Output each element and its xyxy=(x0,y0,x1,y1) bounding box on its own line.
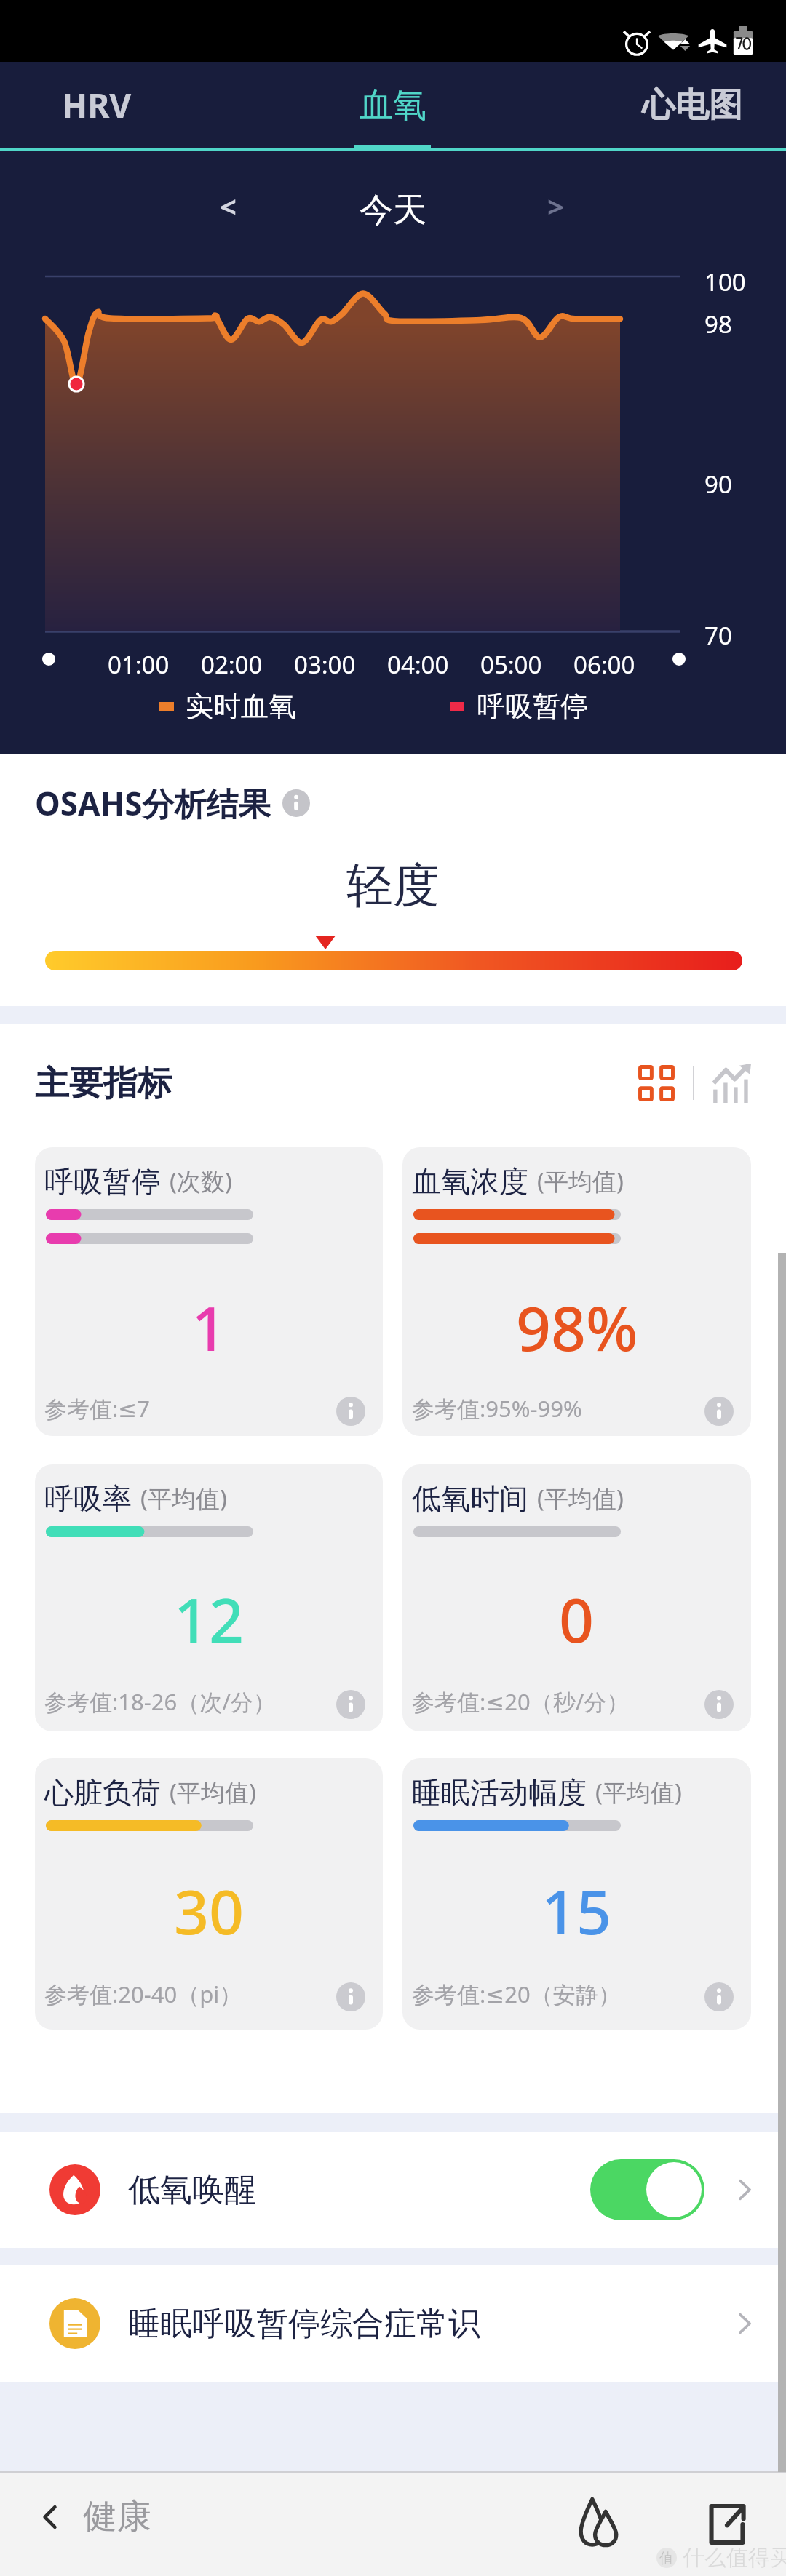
staticText: 呼吸暂停 xyxy=(477,689,588,724)
button[interactable]: 睡眠呼吸暂停综合症常识 xyxy=(0,2265,786,2382)
staticText: (平均值) xyxy=(170,1776,256,1809)
staticText: 98% xyxy=(516,1285,638,1368)
button[interactable]: Info xyxy=(704,1690,734,1719)
button[interactable]: 呼吸暂停 xyxy=(35,1147,383,1436)
staticText: 12 xyxy=(174,1577,245,1660)
button[interactable]: Blood oxygen xyxy=(571,2494,627,2549)
button[interactable]: Info xyxy=(336,1982,365,2011)
button[interactable]: Info xyxy=(704,1397,734,1426)
button[interactable]: Next day xyxy=(528,179,582,233)
staticText: 参考值:≤20（安静） xyxy=(412,1979,621,2009)
staticText: 98 xyxy=(704,308,732,340)
button[interactable]: 心脏负荷 xyxy=(35,1758,383,2030)
staticText: 主要指标 xyxy=(35,1062,172,1104)
staticText: < xyxy=(220,186,237,226)
button[interactable]: Info xyxy=(704,1982,734,2011)
staticText: 70 xyxy=(704,619,732,652)
staticText: 15 xyxy=(541,1869,612,1952)
staticText: 心脏负荷 xyxy=(44,1774,161,1811)
button[interactable]: 睡眠活动幅度 xyxy=(402,1758,751,2030)
staticText: 睡眠呼吸暂停综合症常识 xyxy=(128,2304,480,2344)
staticText: 值 xyxy=(659,2549,674,2567)
staticText: 今天 xyxy=(360,189,426,231)
staticText: 轻度 xyxy=(346,856,440,915)
staticText: 0 xyxy=(559,1577,595,1660)
staticText: 实时血氧 xyxy=(186,689,296,724)
staticText: (平均值) xyxy=(595,1776,682,1809)
button[interactable]: HRV xyxy=(0,62,194,148)
staticText: 呼吸率 xyxy=(44,1480,132,1517)
staticText: 心电图 xyxy=(642,84,742,127)
staticText: 参考值:95%-99% xyxy=(412,1393,582,1424)
staticText: 血氧 xyxy=(360,84,426,127)
staticText: 呼吸暂停 xyxy=(44,1163,161,1200)
button[interactable]: Info xyxy=(336,1397,365,1426)
staticText: 参考值:18-26（次/分） xyxy=(44,1686,276,1717)
staticText: OSAHS分析结果 xyxy=(35,781,271,825)
staticText: 30 xyxy=(174,1869,245,1952)
staticText: 参考值:20-40（pi） xyxy=(44,1979,242,2009)
staticText: 低氧唤醒 xyxy=(128,2170,256,2210)
staticText: (次数) xyxy=(170,1165,232,1197)
staticText: 血氧浓度 xyxy=(412,1163,528,1200)
staticText: 02:00 xyxy=(201,648,263,681)
staticText: 100 xyxy=(704,266,746,298)
button[interactable]: 健康 xyxy=(29,2491,156,2543)
staticText: HRV xyxy=(62,82,132,128)
staticText: 1 xyxy=(191,1285,227,1368)
staticText: 06:00 xyxy=(573,648,635,681)
button[interactable]: 低氧唤醒 xyxy=(0,2132,786,2248)
button[interactable]: Trend view xyxy=(712,1064,751,1103)
button[interactable]: Share xyxy=(699,2497,755,2552)
staticText: 04:00 xyxy=(387,648,449,681)
staticText: 05:00 xyxy=(480,648,542,681)
staticText: 什么值得买 xyxy=(683,2544,786,2572)
staticText: 睡眠活动幅度 xyxy=(412,1774,587,1811)
staticText: 03:00 xyxy=(294,648,356,681)
button[interactable]: Toggle low oxygen alert xyxy=(590,2159,704,2220)
button[interactable]: 心电图 xyxy=(598,62,786,148)
button[interactable]: Grid view xyxy=(638,1064,675,1102)
button[interactable]: Previous day xyxy=(201,179,255,233)
staticText: (平均值) xyxy=(537,1482,624,1515)
button[interactable]: 呼吸率 xyxy=(35,1464,383,1731)
button[interactable]: 血氧 xyxy=(298,62,488,148)
staticText: 参考值:≤20（秒/分） xyxy=(412,1686,630,1717)
button[interactable]: Info xyxy=(336,1690,365,1719)
staticText: 90 xyxy=(704,468,732,501)
button[interactable]: Info about OSAHS xyxy=(282,789,310,817)
staticText: 01:00 xyxy=(108,648,170,681)
button[interactable]: 血氧浓度 xyxy=(402,1147,751,1436)
staticText: 参考值:≤7 xyxy=(44,1393,151,1424)
staticText: 健康 xyxy=(83,2495,151,2538)
button[interactable]: 低氧时间 xyxy=(402,1464,751,1731)
staticText: 低氧时间 xyxy=(412,1480,528,1517)
staticText: (平均值) xyxy=(537,1165,624,1197)
staticText: > xyxy=(547,186,564,226)
staticText: (平均值) xyxy=(140,1482,227,1515)
